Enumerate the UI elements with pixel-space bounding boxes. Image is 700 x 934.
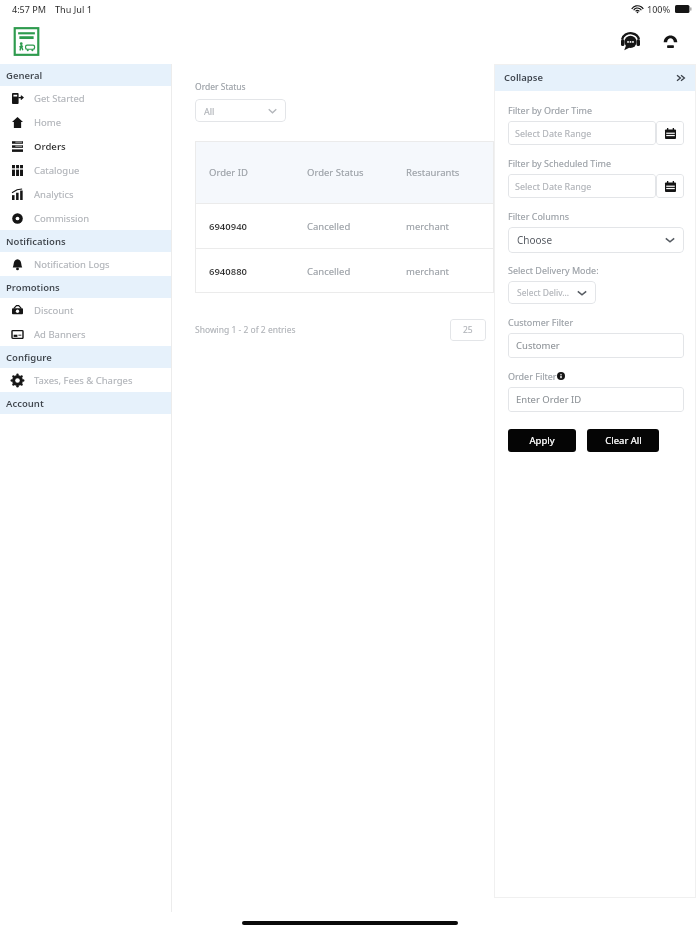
staticText: Catalogue: [34, 164, 80, 177]
staticText: Showing 1 - 2 of 2 entries: [195, 324, 296, 336]
button[interactable]: Enter Order ID: [508, 387, 684, 412]
staticText: 25: [463, 324, 473, 336]
button[interactable]: Select Date Range: [508, 174, 656, 198]
staticText: Order Filter: [508, 370, 557, 382]
staticText: Orders: [34, 140, 66, 153]
staticText: Configure: [6, 351, 52, 364]
staticText: Ad Banners: [34, 328, 86, 341]
button[interactable]: Get Started: [0, 86, 171, 110]
button[interactable]: 6940880: [195, 249, 494, 293]
staticText: Select Deliv...: [517, 287, 570, 299]
staticText: Order ID: [209, 166, 248, 179]
staticText: Taxes, Fees & Charges: [34, 374, 133, 387]
button[interactable]: Select Deliv...: [508, 281, 596, 304]
staticText: Cancelled: [307, 265, 351, 278]
staticText: Order Status: [307, 166, 364, 179]
staticText: Promotions: [6, 281, 60, 294]
staticText: Notification Logs: [34, 258, 110, 271]
button[interactable]: Associated Gifts home: [11, 26, 42, 57]
button[interactable]: Clear All: [587, 429, 659, 452]
staticText: Select Date Range: [515, 180, 592, 192]
button[interactable]: Open calendar: [656, 174, 684, 198]
staticText: merchant: [406, 265, 450, 278]
button[interactable]: Ad Banners: [0, 322, 171, 346]
button[interactable]: Commission: [0, 206, 171, 230]
staticText: Thu Jul 1: [55, 3, 92, 15]
staticText: 100%: [647, 3, 671, 15]
staticText: All: [204, 105, 215, 117]
staticText: merchant: [406, 220, 450, 233]
button[interactable]: All: [195, 99, 286, 122]
staticText: Choose: [517, 233, 553, 247]
staticText: Select Delivery Mode:: [508, 264, 599, 276]
staticText: Order Status: [195, 81, 246, 93]
staticText: Cancelled: [307, 220, 351, 233]
button[interactable]: Orders: [0, 134, 171, 158]
button[interactable]: Collapse: [494, 64, 696, 91]
button[interactable]: Taxes, Fees & Charges: [0, 368, 171, 392]
staticText: 6940940: [209, 220, 248, 233]
staticText: Clear All: [605, 434, 642, 447]
button[interactable]: Select Date Range: [508, 121, 656, 145]
staticText: Filter by Order Time: [508, 104, 593, 116]
button[interactable]: Customer: [508, 333, 684, 358]
button[interactable]: Home: [0, 110, 171, 134]
staticText: Filter by Scheduled Time: [508, 157, 612, 169]
staticText: Customer: [516, 339, 560, 352]
staticText: Select Date Range: [515, 127, 592, 139]
staticText: Restaurants: [406, 166, 460, 179]
staticText: 4:57 PM: [12, 3, 46, 15]
staticText: Apply: [529, 434, 555, 447]
button[interactable]: Notification Logs: [0, 252, 171, 276]
button[interactable]: Analytics: [0, 182, 171, 206]
staticText: Analytics: [34, 188, 74, 201]
button[interactable]: Choose: [508, 227, 684, 253]
button[interactable]: 6940940: [195, 204, 494, 248]
button[interactable]: Account: [657, 28, 683, 54]
staticText: Customer Filter: [508, 316, 574, 328]
button[interactable]: Open calendar: [656, 121, 684, 145]
staticText: Enter Order ID: [516, 393, 582, 406]
staticText: Notifications: [6, 235, 66, 248]
button[interactable]: Catalogue: [0, 158, 171, 182]
staticText: Collapse: [504, 71, 544, 84]
staticText: Get Started: [34, 92, 85, 105]
staticText: Filter Columns: [508, 210, 570, 222]
staticText: 6940880: [209, 265, 248, 278]
button[interactable]: 25: [450, 319, 486, 341]
staticText: Home: [34, 116, 62, 129]
staticText: General: [6, 69, 43, 82]
button[interactable]: Discount: [0, 298, 171, 322]
staticText: Commission: [34, 212, 90, 225]
button[interactable]: Support chat: [617, 28, 643, 54]
staticText: Account: [6, 397, 44, 410]
staticText: Discount: [34, 304, 74, 317]
button[interactable]: Apply: [508, 429, 576, 452]
